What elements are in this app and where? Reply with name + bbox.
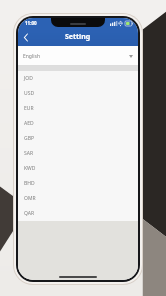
button[interactable]: Back (18, 29, 34, 45)
button[interactable]: EUR (18, 101, 138, 116)
staticText: AED (24, 120, 34, 127)
staticText: USD (24, 90, 35, 97)
staticText: BHD (24, 180, 35, 187)
staticText: English (23, 53, 41, 60)
button[interactable]: English (18, 46, 138, 66)
staticText: GBP (24, 135, 34, 142)
staticText: OMR (24, 195, 36, 202)
staticText: 11:00 (25, 20, 37, 26)
staticText: KWD (24, 165, 36, 172)
button[interactable]: GBP (18, 131, 138, 146)
staticText: Setting (65, 32, 91, 42)
staticText: SAR (24, 150, 34, 157)
staticText: QAR (24, 210, 35, 217)
staticText: EUR (24, 105, 34, 112)
staticText: JOD (24, 75, 33, 82)
button[interactable]: USD (18, 86, 138, 101)
button[interactable]: QAR (18, 206, 138, 221)
button[interactable]: SAR (18, 146, 138, 161)
button[interactable]: JOD (18, 71, 138, 86)
button[interactable]: BHD (18, 176, 138, 191)
button[interactable]: KWD (18, 161, 138, 176)
button[interactable]: AED (18, 116, 138, 131)
button[interactable]: OMR (18, 191, 138, 206)
